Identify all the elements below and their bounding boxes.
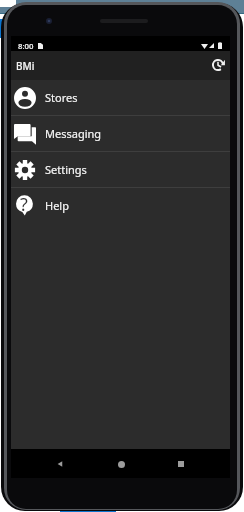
button[interactable]: Messaging xyxy=(11,116,230,152)
staticText: Stores xyxy=(45,90,78,105)
staticText: Messaging xyxy=(45,126,102,141)
staticText: Help xyxy=(45,198,69,213)
button[interactable]: Recents xyxy=(169,452,193,476)
staticText: Settings xyxy=(45,162,87,177)
button[interactable]: Settings xyxy=(11,152,230,188)
button[interactable]: Update xyxy=(206,53,230,77)
button[interactable]: Home xyxy=(109,452,133,476)
staticText: ? xyxy=(20,192,28,214)
button[interactable]: ? xyxy=(11,188,230,222)
staticText: BMi xyxy=(16,59,35,73)
button[interactable]: Back xyxy=(48,452,72,476)
staticText: 8:00 xyxy=(18,41,34,52)
button[interactable]: Stores xyxy=(11,80,230,116)
